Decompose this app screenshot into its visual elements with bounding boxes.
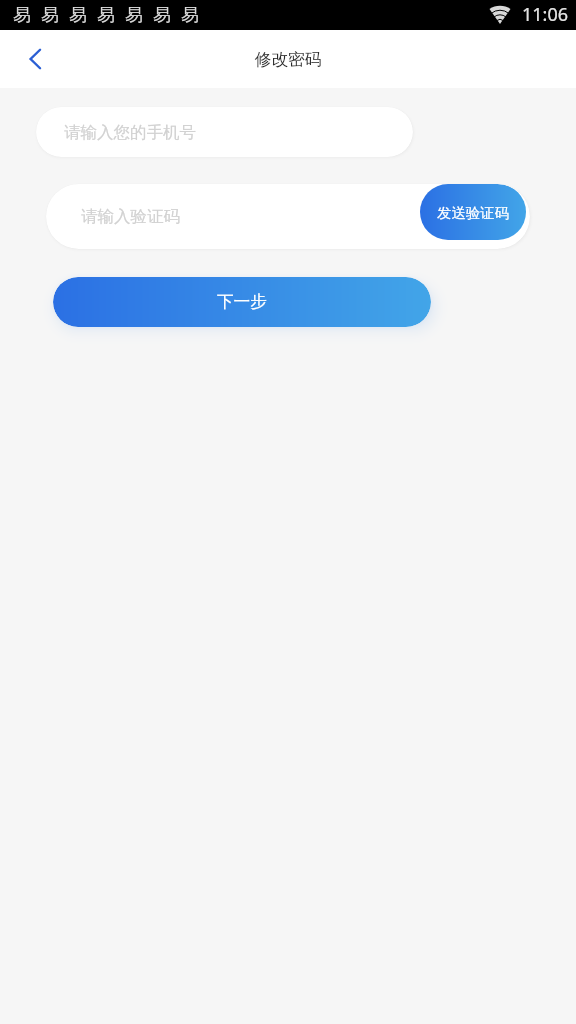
staticText: 易 [69, 4, 87, 27]
staticText: 发送验证码 [437, 204, 509, 222]
button[interactable]: 请输入您的手机号 [36, 107, 413, 157]
staticText: 修改密码 [254, 49, 322, 70]
staticText: 易 [181, 4, 199, 27]
button[interactable]: 发送验证码 [420, 184, 526, 240]
staticText: 请输入验证码 [81, 206, 180, 227]
staticText: 易 [13, 4, 31, 27]
staticText: 11:06 [522, 2, 569, 27]
button[interactable]: Back [0, 30, 58, 88]
staticText: 易 [97, 4, 115, 27]
staticText: 易 [153, 4, 171, 27]
button[interactable]: 请输入验证码 [46, 184, 530, 249]
staticText: 易 [41, 4, 59, 27]
staticText: 下一步 [217, 291, 267, 312]
button[interactable]: 下一步 [53, 277, 431, 327]
staticText: 请输入您的手机号 [64, 122, 196, 143]
staticText: 易 [125, 4, 143, 27]
